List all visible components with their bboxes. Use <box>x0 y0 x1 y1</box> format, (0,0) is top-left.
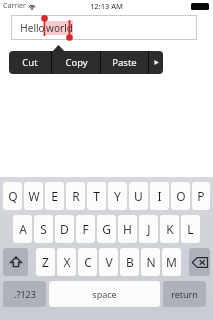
button[interactable]: Q <box>3 182 22 210</box>
button[interactable]: space <box>49 281 160 307</box>
button[interactable]: Z <box>36 248 55 276</box>
button[interactable]: Copy <box>52 51 100 74</box>
staticText: M <box>166 254 177 270</box>
staticText: H <box>123 221 132 237</box>
staticText: J <box>147 221 151 237</box>
button[interactable]: More options <box>149 51 163 74</box>
button[interactable]: M <box>162 248 181 276</box>
staticText: S <box>40 221 47 237</box>
staticText: V <box>105 254 113 270</box>
staticText: P <box>197 188 205 204</box>
button[interactable]: R <box>66 182 85 210</box>
button[interactable]: F <box>76 215 95 243</box>
button[interactable]: P <box>192 182 210 210</box>
button[interactable]: H <box>118 215 137 243</box>
staticText: Carrier <box>3 1 26 11</box>
staticText: Paste <box>112 56 137 69</box>
button[interactable]: U <box>129 182 148 210</box>
staticText: space <box>92 288 117 300</box>
button[interactable]: Paste <box>101 51 148 74</box>
staticText: C <box>84 254 92 270</box>
staticText: Y <box>114 188 121 204</box>
button[interactable]: Backspace <box>189 248 210 276</box>
button[interactable]: J <box>139 215 158 243</box>
button[interactable]: return <box>163 281 206 307</box>
button[interactable]: Cut <box>9 51 51 74</box>
button[interactable]: Shift <box>3 248 28 276</box>
button[interactable]: O <box>171 182 190 210</box>
staticText: E <box>51 188 58 204</box>
button[interactable]: .?123 <box>3 281 46 307</box>
staticText: T <box>93 188 100 204</box>
staticText: Z <box>42 254 49 270</box>
staticText: .?123 <box>14 288 36 300</box>
staticText: K <box>166 221 174 237</box>
button[interactable]: D <box>55 215 74 243</box>
staticText: L <box>187 221 194 237</box>
button[interactable]: V <box>99 248 118 276</box>
button[interactable]: W <box>24 182 43 210</box>
button[interactable]: E <box>45 182 64 210</box>
staticText: I <box>157 188 162 204</box>
staticText: R <box>72 188 80 204</box>
button[interactable]: N <box>141 248 160 276</box>
staticText: 12:13 AM <box>90 1 123 11</box>
button[interactable]: X <box>57 248 76 276</box>
staticText: F <box>82 221 89 237</box>
button[interactable]: L <box>181 215 200 243</box>
staticText: W <box>28 188 40 204</box>
staticText: B <box>126 254 134 270</box>
staticText: G <box>102 221 111 237</box>
staticText: D <box>60 221 69 237</box>
staticText: Copy <box>65 56 88 69</box>
staticText: world <box>46 21 73 35</box>
button[interactable]: T <box>87 182 106 210</box>
staticText: X <box>63 254 71 270</box>
button[interactable]: Y <box>108 182 127 210</box>
button[interactable]: I <box>150 182 169 210</box>
button[interactable]: K <box>160 215 179 243</box>
staticText: N <box>146 254 156 270</box>
staticText: U <box>134 188 143 204</box>
staticText: O <box>176 188 186 204</box>
button[interactable]: C <box>78 248 97 276</box>
staticText: return <box>171 288 198 300</box>
button[interactable]: G <box>97 215 116 243</box>
staticText: Hello <box>19 21 46 35</box>
staticText: A <box>19 221 27 237</box>
staticText: Cut <box>22 56 38 69</box>
button[interactable]: S <box>34 215 53 243</box>
button[interactable]: A <box>13 215 32 243</box>
button[interactable]: Hello <box>11 15 197 40</box>
staticText: Q <box>8 188 18 204</box>
button[interactable]: B <box>120 248 139 276</box>
